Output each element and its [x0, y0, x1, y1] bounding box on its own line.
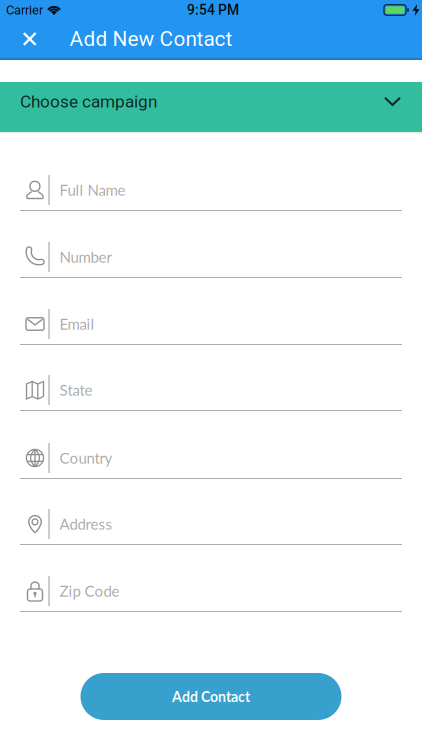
button[interactable]: Choose campaign — [0, 82, 422, 132]
button[interactable]: Number — [0, 211, 422, 278]
staticText: Choose campaign — [20, 91, 157, 112]
button[interactable]: Full Name — [0, 134, 422, 211]
button[interactable]: Country — [0, 411, 422, 479]
button[interactable]: Address — [0, 479, 422, 545]
button[interactable] — [23, 32, 36, 46]
staticText: Add Contact — [172, 688, 250, 705]
button[interactable]: Zip Code — [0, 545, 422, 612]
staticText: Country — [59, 449, 112, 467]
button[interactable]: Add Contact — [80, 673, 341, 720]
staticText: Address — [59, 515, 112, 533]
staticText: Full Name — [59, 181, 125, 199]
staticText: 9:54 PM — [187, 2, 239, 18]
staticText: Email — [59, 315, 94, 333]
button[interactable]: Email — [0, 278, 422, 345]
staticText: Add New Contact — [69, 27, 232, 51]
staticText: Number — [59, 248, 111, 266]
button[interactable]: State — [0, 345, 422, 411]
staticText: State — [59, 381, 92, 399]
staticText: Carrier — [6, 2, 43, 17]
staticText: Zip Code — [59, 582, 119, 600]
